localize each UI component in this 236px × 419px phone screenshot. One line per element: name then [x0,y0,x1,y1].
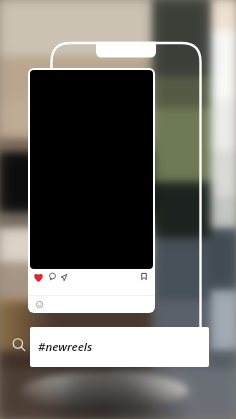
button[interactable]: Like [33,272,44,282]
staticText: #newreels [38,339,93,355]
button[interactable] [30,70,153,269]
button[interactable]: #newreels [30,327,209,367]
button[interactable]: Save [141,273,147,280]
button[interactable]: Search [12,338,25,351]
button[interactable]: Share [61,274,67,281]
button[interactable]: Comment [49,273,56,280]
button[interactable]: Emoji [36,301,43,308]
